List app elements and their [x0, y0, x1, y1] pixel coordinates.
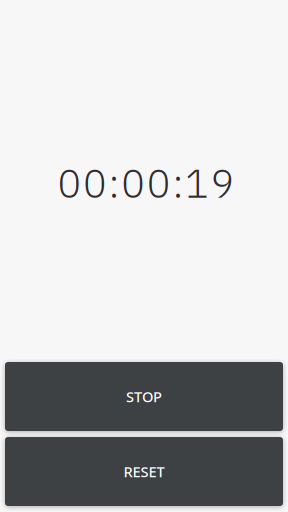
- staticText: RESET: [123, 461, 164, 481]
- staticText: STOP: [126, 386, 162, 406]
- staticText: 00:00:19: [57, 157, 235, 208]
- button[interactable]: STOP: [5, 362, 283, 431]
- button[interactable]: RESET: [5, 437, 283, 506]
